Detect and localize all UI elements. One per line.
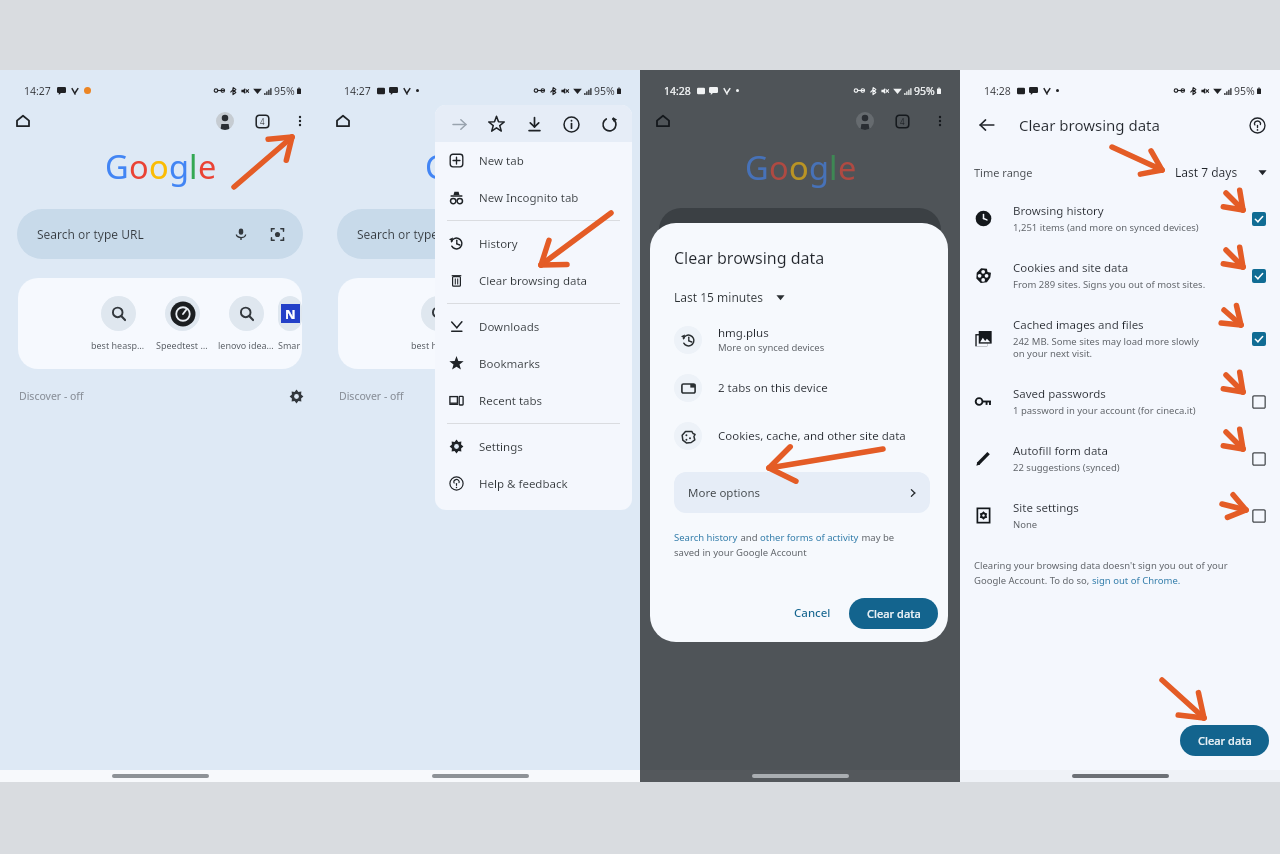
button[interactable]: Search or type URL xyxy=(337,209,623,259)
button[interactable]: Settings xyxy=(435,428,632,465)
button[interactable]: Cached images and files xyxy=(960,317,1280,360)
button[interactable]: Help xyxy=(1249,117,1266,134)
staticText: g xyxy=(489,144,509,188)
staticText: 95% xyxy=(914,84,935,98)
staticText: Autofill form data xyxy=(1013,443,1108,459)
staticText: hmg.plus xyxy=(718,325,769,341)
staticText: Saved passwords xyxy=(1013,386,1106,402)
staticText: Clearing your browsing data doesn't sign… xyxy=(974,559,1228,572)
button[interactable]: Time range xyxy=(960,159,1280,185)
staticText: Search or type URL xyxy=(357,226,464,242)
button[interactable]: N xyxy=(598,296,622,351)
staticText: G xyxy=(745,145,769,189)
staticText: New Incognito tab xyxy=(479,190,579,206)
staticText: e xyxy=(838,145,856,189)
staticText: Search history xyxy=(674,531,738,544)
button[interactable]: More options xyxy=(292,113,308,129)
button[interactable]: Cookies and site data xyxy=(960,260,1280,291)
button[interactable]: Autofill form data xyxy=(960,443,1280,474)
staticText: may be xyxy=(859,531,895,544)
button[interactable]: Saved passwords xyxy=(960,386,1280,417)
staticText: Browsing history xyxy=(1013,203,1104,219)
staticText: From 289 sites. Signs you out of most si… xyxy=(1013,278,1206,291)
button[interactable]: Speedtest … xyxy=(150,296,214,351)
staticText: 95% xyxy=(274,84,295,98)
staticText: o xyxy=(789,145,809,189)
button[interactable]: Downloads xyxy=(435,308,632,345)
staticText: o xyxy=(769,145,789,189)
button[interactable]: Search or type URL xyxy=(17,209,303,259)
button[interactable]: N xyxy=(278,296,302,351)
button[interactable]: best heasp… xyxy=(406,296,470,351)
button[interactable]: lenovo idea… xyxy=(214,296,278,351)
button[interactable]: best heasp… xyxy=(86,296,150,351)
button[interactable]: Help & feedback xyxy=(435,465,632,502)
staticText: and xyxy=(738,531,760,544)
button[interactable]: Browsing history xyxy=(960,203,1280,234)
button[interactable]: History xyxy=(435,225,632,262)
button[interactable]: Bookmark xyxy=(482,110,510,138)
staticText: Clear browsing data xyxy=(674,247,825,269)
staticText: Downloads xyxy=(479,319,540,335)
staticText: New tab xyxy=(479,153,524,169)
staticText: 2 tabs on this device xyxy=(718,380,828,396)
button[interactable]: sign out of Chrome. xyxy=(1092,574,1181,587)
button[interactable]: New Incognito tab xyxy=(435,179,632,216)
staticText: 4 xyxy=(260,116,265,127)
staticText: o xyxy=(149,144,169,188)
staticText: l xyxy=(189,144,198,188)
button[interactable]: Page info xyxy=(557,110,585,138)
staticText: History xyxy=(479,236,518,252)
button[interactable]: Site settings xyxy=(960,500,1280,531)
staticText: Last 7 days xyxy=(1175,164,1238,180)
staticText: e xyxy=(518,144,536,188)
button[interactable]: Recent tabs xyxy=(435,382,632,419)
staticText: Time range xyxy=(974,165,1033,180)
button[interactable]: New tab xyxy=(435,142,632,179)
staticText: Bookmarks xyxy=(479,356,541,372)
button[interactable]: Download xyxy=(520,110,548,138)
button[interactable]: Account xyxy=(216,112,234,130)
button[interactable]: More options xyxy=(674,472,930,513)
button[interactable]: Home xyxy=(333,111,353,131)
button[interactable]: Settings xyxy=(289,389,304,404)
staticText: Last 15 minutes xyxy=(674,289,764,305)
staticText: Discover - off xyxy=(339,389,404,403)
staticText: 95% xyxy=(594,84,615,98)
button[interactable]: Speedtest … xyxy=(470,296,534,351)
staticText: G xyxy=(105,144,129,188)
staticText: best heasp… xyxy=(411,339,465,351)
staticText: Clear data xyxy=(867,606,921,621)
staticText: Site settings xyxy=(1013,500,1079,516)
staticText: Clear browsing data xyxy=(1019,115,1160,135)
staticText: None xyxy=(1013,518,1038,531)
staticText: 95% xyxy=(1234,84,1255,98)
button[interactable]: Clear data xyxy=(849,598,938,629)
button[interactable]: Clear data xyxy=(1180,725,1269,756)
button[interactable]: Forward xyxy=(445,110,473,138)
button[interactable]: Reload xyxy=(595,110,623,138)
staticText: l xyxy=(509,144,518,188)
staticText: 242 MB. Some sites may load more slowly … xyxy=(1013,335,1199,360)
staticText: Cookies and site data xyxy=(1013,260,1129,276)
staticText: Discover - off xyxy=(19,389,84,403)
staticText: 14:27 xyxy=(344,84,371,98)
button[interactable]: Tabs xyxy=(254,113,271,130)
staticText: o xyxy=(469,144,489,188)
staticText: 4 xyxy=(900,116,905,127)
staticText: 22 suggestions (synced) xyxy=(1013,461,1120,474)
staticText: 14:28 xyxy=(984,84,1011,98)
button[interactable]: Clear browsing data xyxy=(435,262,632,299)
staticText: e xyxy=(198,144,216,188)
button[interactable]: Back xyxy=(978,116,996,134)
button[interactable]: Time range: Last 15 minutes xyxy=(674,289,785,305)
button[interactable]: lenovo idea… xyxy=(534,296,598,351)
staticText: Settings xyxy=(479,439,523,455)
button[interactable]: Cancel xyxy=(780,597,845,629)
button[interactable]: Home xyxy=(13,111,33,131)
staticText: 14:28 xyxy=(664,84,691,98)
button[interactable]: Bookmarks xyxy=(435,345,632,382)
